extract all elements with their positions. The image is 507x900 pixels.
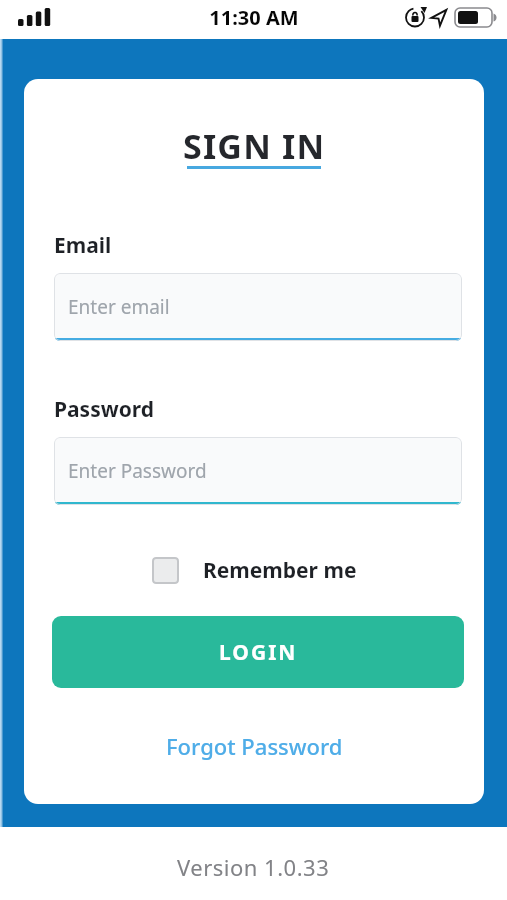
button[interactable]: Forgot Password — [166, 731, 343, 761]
button[interactable]: Enter email — [54, 273, 462, 341]
button[interactable]: Enter Password — [54, 437, 462, 505]
staticText: Enter email — [68, 294, 170, 320]
staticText: Remember me — [203, 556, 357, 585]
staticText: SIGN IN — [183, 123, 326, 169]
staticText: 11:30 AM — [209, 4, 299, 31]
button[interactable]: Remember me — [24, 556, 484, 585]
staticText: Password — [54, 395, 155, 424]
button[interactable]: LOGIN — [52, 616, 464, 688]
staticText: Enter Password — [68, 458, 207, 484]
staticText: LOGIN — [219, 638, 298, 667]
staticText: Version 1.0.33 — [177, 852, 330, 882]
staticText: Email — [54, 231, 112, 260]
